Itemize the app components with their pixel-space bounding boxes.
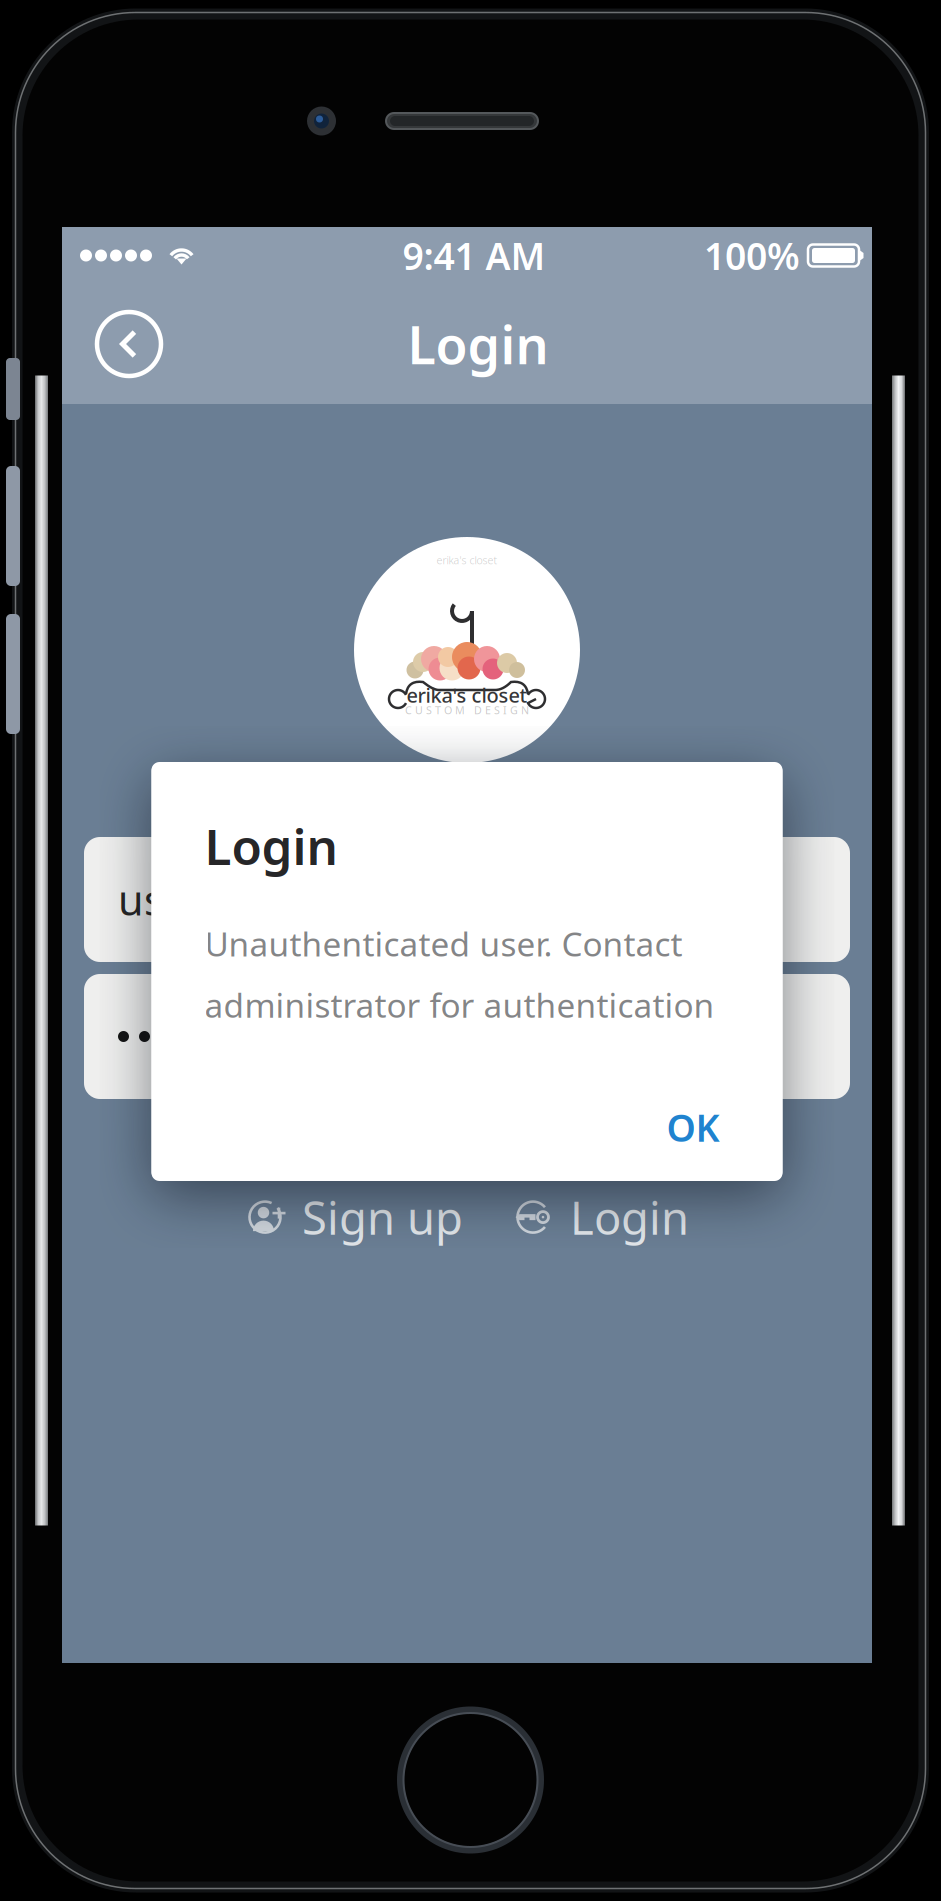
button[interactable]: Login [513, 1175, 689, 1259]
button[interactable]: OK [648, 1086, 737, 1168]
button[interactable] [84, 974, 850, 1099]
button[interactable]: Sign up [245, 1175, 463, 1259]
button[interactable]: Back [87, 302, 171, 386]
staticText: C U S T O M D E S I G N [405, 703, 529, 717]
staticText: Login [407, 309, 548, 379]
staticText: username [118, 872, 315, 927]
staticText: Login [570, 1187, 689, 1247]
staticText: Login [204, 813, 337, 878]
staticText: Sign up [302, 1187, 463, 1247]
staticText: erika's closet [436, 553, 497, 567]
button[interactable]: username [84, 837, 850, 962]
staticText: 9:41 AM [402, 231, 545, 280]
staticText: Unauthenticated user. Contact administra… [204, 921, 714, 1027]
staticText: OK [666, 1102, 719, 1152]
staticText: erika's closet [406, 682, 527, 708]
staticText: 100% [704, 231, 800, 280]
